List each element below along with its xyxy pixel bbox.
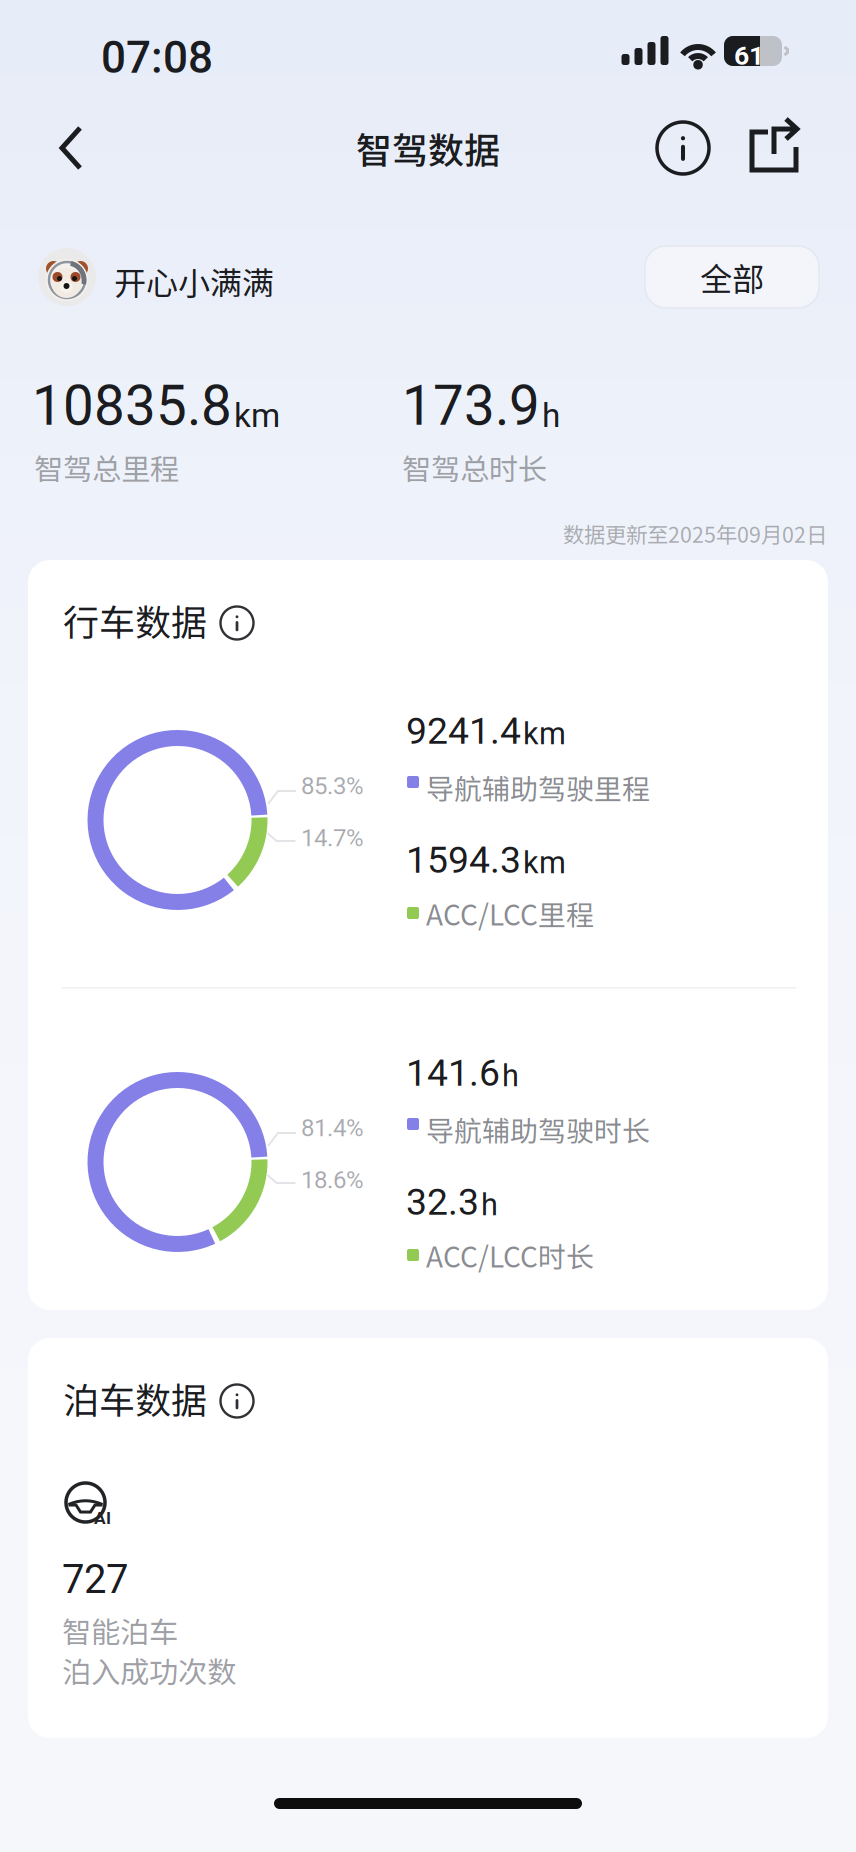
staticText: 智驾总里程	[34, 446, 179, 488]
staticText: 智驾总时长	[402, 446, 547, 488]
staticText: h	[502, 1058, 519, 1094]
staticText: 85.3%	[301, 772, 364, 800]
staticText: 行车数据	[63, 594, 207, 646]
staticText: km	[234, 396, 280, 435]
staticText: 开心小满满	[114, 258, 274, 304]
button[interactable]: Info	[645, 110, 721, 186]
staticText: 141.6	[406, 1051, 500, 1095]
staticText: 智能泊车	[62, 1609, 178, 1651]
staticText: 61	[734, 40, 764, 71]
staticText: h	[542, 396, 560, 435]
staticText: 智驾数据	[356, 122, 500, 174]
button[interactable]: 全部	[645, 246, 819, 308]
staticText: km	[523, 845, 566, 881]
staticText: h	[481, 1187, 498, 1223]
staticText: km	[523, 716, 566, 752]
staticText: 81.4%	[301, 1114, 364, 1142]
staticText: 数据更新至2025年09月02日	[563, 518, 827, 549]
staticText: 14.7%	[301, 824, 364, 852]
button[interactable]: Share	[736, 110, 812, 186]
staticText: 导航辅助驾驶里程	[426, 767, 650, 807]
staticText: 727	[62, 1556, 128, 1603]
staticText: 全部	[700, 254, 764, 300]
button[interactable]: Back	[40, 112, 124, 184]
staticText: 32.3	[406, 1180, 479, 1224]
staticText: AI	[94, 1508, 111, 1528]
staticText: 泊车数据	[63, 1372, 207, 1424]
button[interactable]: Info	[215, 1379, 259, 1423]
staticText: 9241.4	[406, 709, 521, 753]
staticText: 173.9	[402, 374, 540, 438]
staticText: 10835.8	[32, 374, 232, 438]
button[interactable]: Info	[215, 601, 259, 645]
staticText: ACC/LCC里程	[426, 893, 594, 933]
staticText: 1594.3	[406, 838, 521, 882]
staticText: 导航辅助驾驶时长	[426, 1109, 650, 1149]
staticText: 泊入成功次数	[62, 1649, 236, 1691]
staticText: ACC/LCC时长	[426, 1235, 594, 1275]
staticText: 07:08	[101, 32, 213, 84]
staticText: 18.6%	[301, 1166, 364, 1194]
